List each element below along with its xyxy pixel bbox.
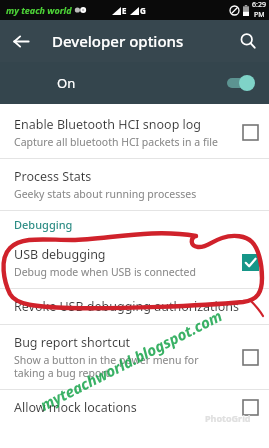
button[interactable]: Process Stats — [0, 159, 269, 210]
staticText: Enable Bluetooth HCI snoop log — [14, 116, 202, 133]
staticText: Show a button in the power menu for taki… — [14, 353, 199, 380]
staticText: 6:29 — [252, 0, 266, 10]
staticText: G — [140, 5, 146, 16]
staticText: myteachworld.blogspot.com — [36, 305, 226, 415]
button[interactable]: Search — [227, 20, 269, 62]
button[interactable]: USB debugging — [0, 237, 269, 288]
staticText: Geeky stats about running processes — [14, 187, 197, 201]
staticText: Debug mode when USB is connected — [14, 265, 196, 279]
button[interactable]: Revoke USB debugging authorizations — [0, 289, 269, 324]
button[interactable]: On — [0, 62, 269, 104]
staticText: Capture all bluetooth HCI packets in a f… — [14, 135, 218, 149]
staticText: On — [57, 74, 223, 92]
staticText: E — [122, 5, 127, 16]
staticText: Revoke USB debugging authorizations — [14, 298, 240, 315]
staticText: Debugging — [14, 217, 73, 232]
button[interactable]: Enable Bluetooth HCI snoop log — [0, 107, 269, 158]
staticText: Process Stats — [14, 168, 92, 185]
button[interactable]: Bug report shortcut — [0, 325, 269, 389]
button[interactable]: Allow mock locations — [0, 390, 269, 425]
staticText: my teach world — [6, 4, 72, 16]
staticText: Developer options — [52, 31, 227, 51]
staticText: Allow mock locations — [14, 399, 137, 416]
staticText: PhotoGrid — [205, 412, 251, 424]
staticText: USB debugging — [14, 246, 106, 263]
staticText: Bug report shortcut — [14, 334, 131, 351]
button[interactable]: Back — [0, 20, 42, 62]
staticText: PM — [254, 10, 265, 20]
